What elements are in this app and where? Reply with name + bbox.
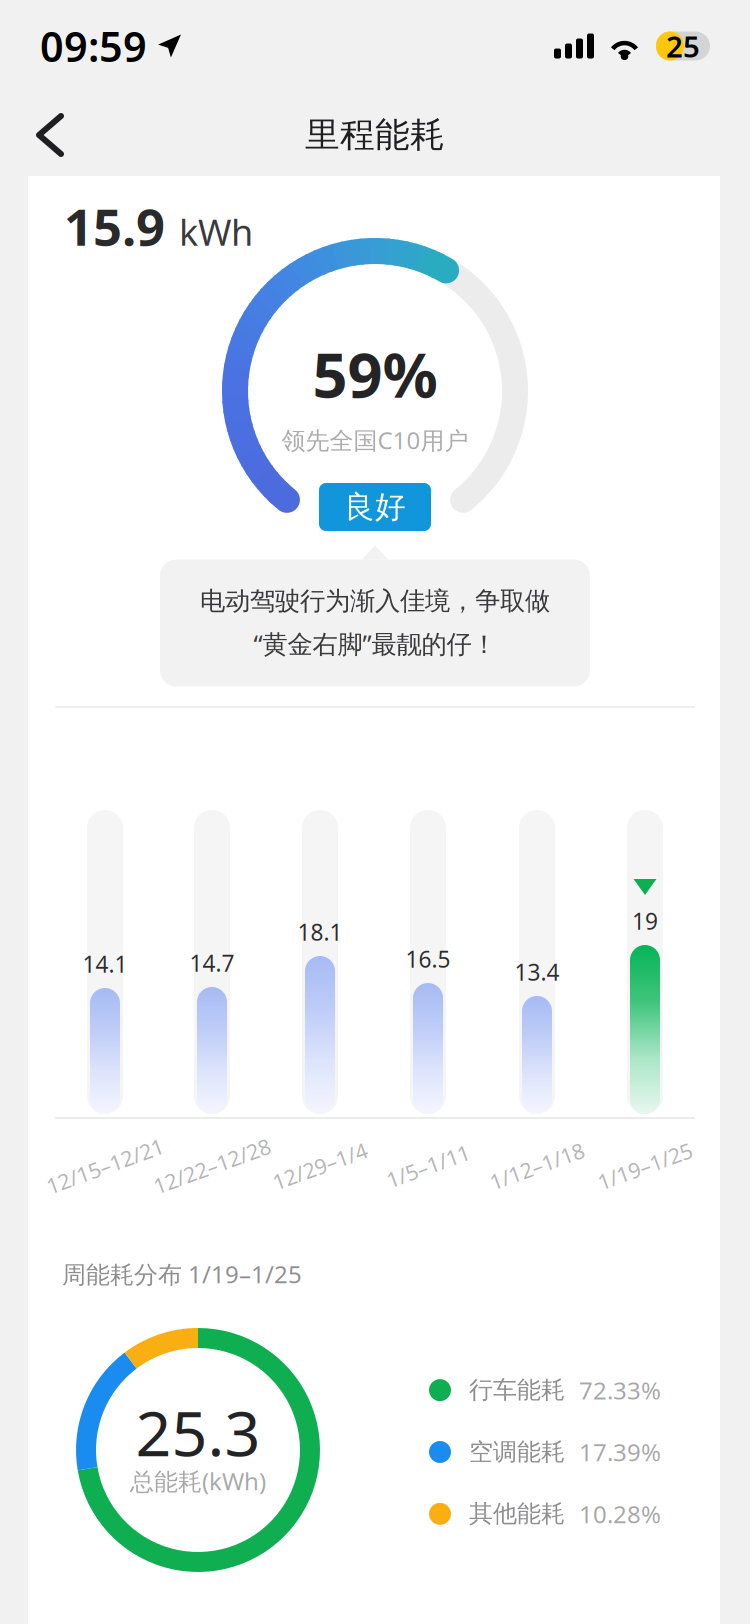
staticText: 良好: [344, 488, 406, 526]
button[interactable]: 良好: [319, 483, 431, 531]
staticText: 15.9: [64, 192, 165, 260]
staticText: 1/12–1/18: [487, 1152, 586, 1180]
staticText: 10.28%: [579, 1498, 661, 1530]
staticText: kWh: [179, 208, 253, 256]
staticText: 09:59: [40, 19, 147, 73]
staticText: 总能耗(kWh): [130, 1465, 266, 1497]
staticText: 14.7: [189, 948, 234, 978]
staticText: 25: [666, 26, 700, 65]
staticText: 17.39%: [579, 1436, 661, 1468]
staticText: 13.4: [514, 957, 559, 987]
staticText: 25.3: [135, 1390, 260, 1474]
staticText: 16.5: [405, 944, 450, 974]
staticText: “黄金右脚”最靓的仔！: [253, 627, 496, 660]
staticText: 14.1: [82, 949, 127, 979]
staticText: 72.33%: [579, 1374, 661, 1406]
staticText: 行车能耗: [469, 1375, 565, 1405]
staticText: 19: [632, 906, 658, 936]
staticText: 12/29–1/4: [270, 1152, 369, 1180]
staticText: 空调能耗: [469, 1437, 565, 1467]
staticText: 1/19–1/25: [595, 1152, 694, 1180]
staticText: 1/5–1/11: [384, 1152, 471, 1180]
staticText: 18.1: [297, 917, 342, 947]
staticText: 周能耗分布 1/19–1/25: [62, 1258, 302, 1290]
staticText: 领先全国C10用户: [281, 424, 468, 456]
staticText: 里程能耗: [305, 114, 445, 156]
staticText: 59%: [312, 333, 437, 415]
button[interactable]: Back: [12, 97, 88, 173]
staticText: 12/22–12/28: [150, 1152, 273, 1180]
staticText: 其他能耗: [469, 1499, 565, 1529]
staticText: 电动驾驶行为渐入佳境，争取做: [200, 586, 550, 617]
staticText: 12/15–12/21: [43, 1152, 166, 1180]
